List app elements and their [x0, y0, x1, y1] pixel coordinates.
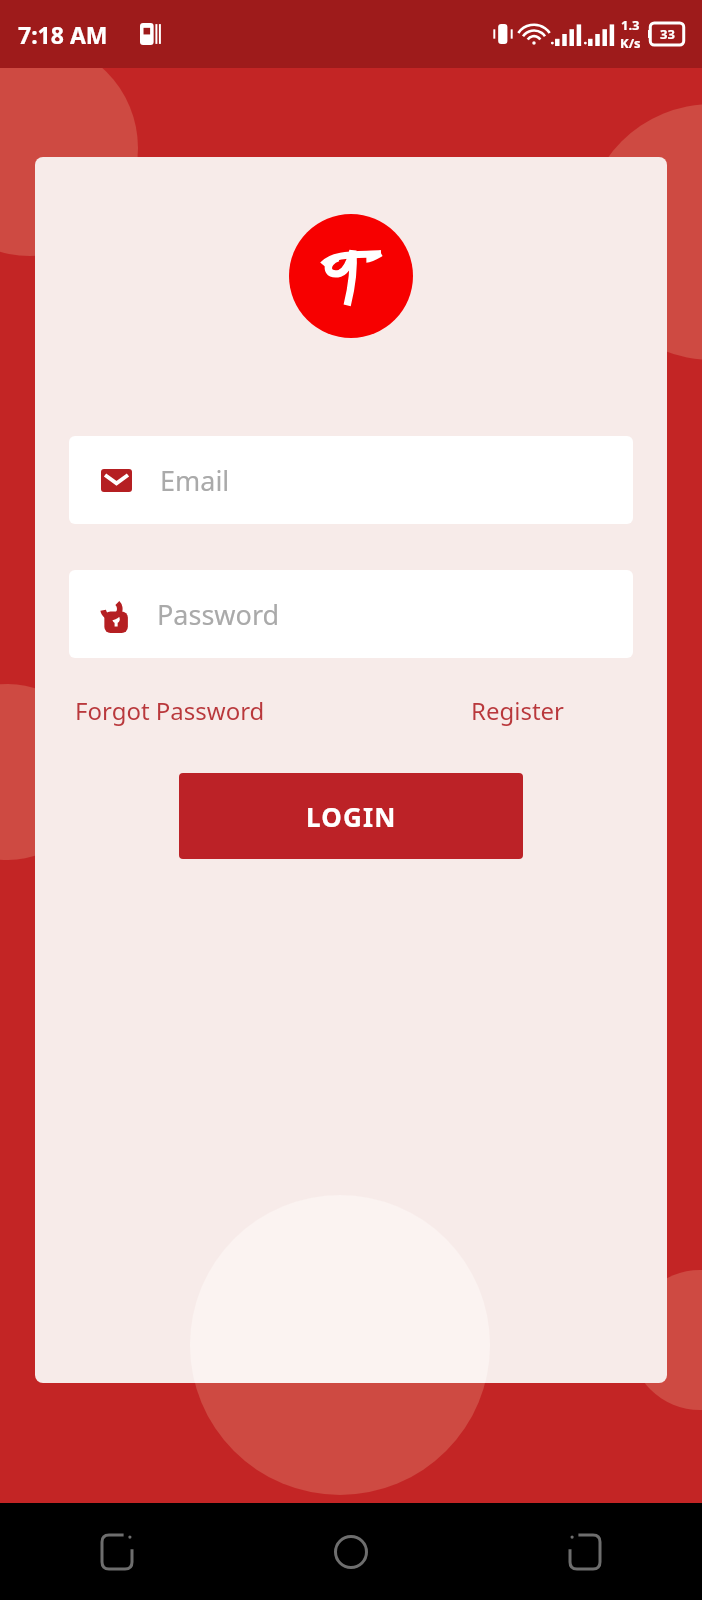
staticText: 1.3 [621, 16, 640, 34]
button[interactable]: Password [69, 570, 633, 658]
staticText: K/s [620, 34, 641, 52]
button[interactable]: LOGIN [179, 773, 523, 859]
staticText: LOGIN [306, 799, 397, 834]
button[interactable]: Forgot Password [69, 688, 271, 733]
staticText: Password [157, 596, 280, 633]
staticText: Email [160, 462, 230, 499]
button[interactable]: Back [468, 1503, 702, 1600]
staticText: Forgot Password [75, 694, 265, 727]
staticText: Register [471, 694, 565, 727]
staticText: 33 [660, 25, 675, 43]
button[interactable]: Recents [0, 1503, 234, 1600]
button[interactable]: Email [69, 436, 633, 524]
button[interactable]: Home [234, 1503, 468, 1600]
staticText: 7:18 AM [18, 19, 108, 50]
button[interactable]: Register [465, 688, 571, 733]
